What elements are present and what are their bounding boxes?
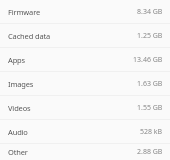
staticText: 1.25 GB: [137, 31, 163, 41]
staticText: 528 kB: [140, 127, 163, 137]
staticText: 1.55 GB: [137, 103, 163, 113]
staticText: Videos: [8, 103, 31, 113]
button[interactable]: Other: [0, 144, 170, 160]
staticText: 8.34 GB: [137, 7, 163, 17]
staticText: 1.63 GB: [137, 79, 163, 89]
staticText: 2.88 GB: [137, 147, 163, 157]
staticText: Other: [8, 147, 28, 157]
button[interactable]: Apps: [0, 48, 170, 72]
button[interactable]: Images: [0, 72, 170, 96]
staticText: Audio: [8, 127, 28, 137]
staticText: Firmware: [8, 7, 41, 17]
staticText: Apps: [8, 55, 26, 65]
staticText: Cached data: [8, 31, 51, 41]
button[interactable]: Videos: [0, 96, 170, 120]
button[interactable]: Firmware: [0, 0, 170, 24]
staticText: 13.46 GB: [133, 55, 163, 65]
button[interactable]: Audio: [0, 120, 170, 144]
button[interactable]: Cached data: [0, 24, 170, 48]
staticText: Images: [8, 79, 34, 89]
